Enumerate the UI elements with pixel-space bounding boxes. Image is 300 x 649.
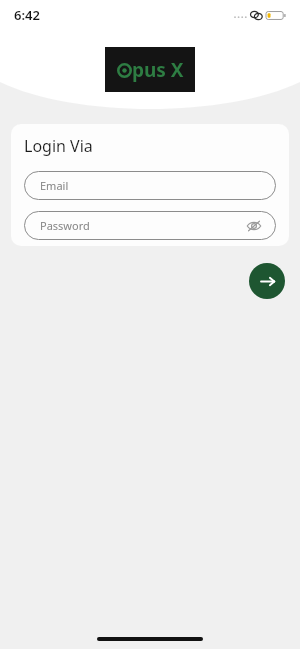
staticText: Password — [40, 218, 90, 233]
staticText: Login Via — [24, 135, 93, 157]
button[interactable]: Show password — [244, 216, 264, 236]
staticText: pus X — [132, 57, 184, 83]
staticText: 6:42 — [14, 6, 40, 24]
button[interactable]: Email — [24, 171, 276, 200]
button[interactable]: Password — [24, 211, 276, 240]
staticText: Email — [40, 178, 69, 193]
button[interactable]: Continue — [249, 263, 285, 299]
